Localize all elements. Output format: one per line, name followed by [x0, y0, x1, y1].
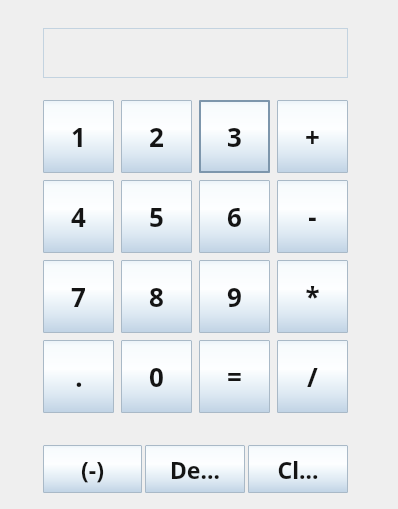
staticText: 8	[149, 279, 164, 314]
button[interactable]: -	[277, 180, 348, 253]
button[interactable]: *	[277, 260, 348, 333]
staticText: 5	[149, 199, 164, 234]
button[interactable]: 5	[121, 180, 192, 253]
staticText: *	[305, 279, 320, 314]
button[interactable]: /	[277, 340, 348, 413]
button[interactable]: =	[199, 340, 270, 413]
staticText: 3	[227, 119, 242, 154]
button[interactable]: 7	[43, 260, 114, 333]
staticText: (-)	[81, 454, 104, 485]
button[interactable]: 4	[43, 180, 114, 253]
button[interactable]: .	[43, 340, 114, 413]
button[interactable]: Cl...	[248, 445, 348, 493]
button[interactable]: 1	[43, 100, 114, 173]
button[interactable]: 6	[199, 180, 270, 253]
staticText: .	[75, 359, 83, 394]
staticText: +	[305, 119, 320, 154]
button[interactable]: 0	[121, 340, 192, 413]
staticText: 1	[71, 119, 86, 154]
button[interactable]: Display	[43, 28, 348, 78]
button[interactable]: (-)	[43, 445, 142, 493]
staticText: 6	[227, 199, 242, 234]
button[interactable]: 8	[121, 260, 192, 333]
staticText: 9	[227, 279, 242, 314]
button[interactable]: 2	[121, 100, 192, 173]
button[interactable]: De...	[145, 445, 245, 493]
staticText: De...	[170, 454, 220, 485]
button[interactable]: 9	[199, 260, 270, 333]
staticText: 0	[149, 359, 164, 394]
staticText: =	[227, 359, 242, 394]
staticText: 7	[71, 279, 86, 314]
staticText: Cl...	[277, 454, 319, 485]
staticText: 2	[149, 119, 164, 154]
staticText: 4	[71, 199, 86, 234]
staticText: -	[308, 199, 317, 234]
button[interactable]: +	[277, 100, 348, 173]
staticText: /	[307, 359, 318, 394]
button[interactable]: 3	[199, 100, 270, 173]
